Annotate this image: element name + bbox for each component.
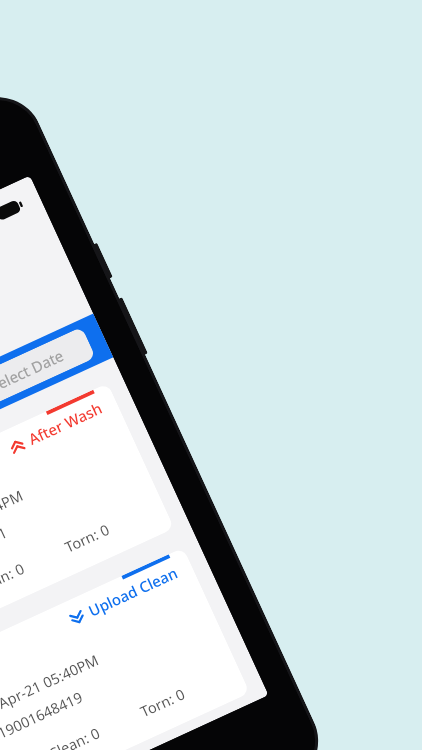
- staticText: Upload Clean: [85, 562, 181, 621]
- staticText: 219001648419: [0, 686, 86, 746]
- staticText: Torn: 0: [61, 519, 112, 557]
- staticText: Clean: 0: [45, 722, 103, 750]
- staticText: 24-Apr-21 05:44PM: [0, 485, 26, 557]
- staticText: Torn: 0: [137, 683, 188, 721]
- staticText: 219001648411: [0, 522, 10, 582]
- button[interactable]: Upload Clean: [0, 547, 250, 750]
- button[interactable]: Select Date: [0, 327, 96, 408]
- button[interactable]: After Wash: [0, 383, 174, 640]
- staticText: Select Date: [0, 345, 67, 396]
- staticText: 24-Apr-21 05:40PM: [0, 649, 102, 722]
- staticText: After Wash: [25, 398, 105, 449]
- staticText: Clean: 0: [0, 558, 28, 599]
